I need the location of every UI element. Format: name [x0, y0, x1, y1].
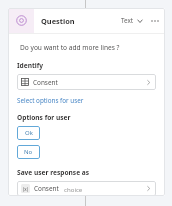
staticText: Select options for user — [17, 96, 84, 105]
button[interactable]: No — [17, 145, 40, 159]
staticText: Consent — [34, 184, 59, 193]
button[interactable]: Text — [119, 14, 145, 27]
staticText: Consent — [33, 78, 58, 87]
button[interactable]: Consent — [17, 74, 156, 90]
staticText: Options for user — [17, 113, 71, 122]
button[interactable]: (x) — [17, 181, 156, 196]
button[interactable]: Select options for user — [17, 96, 84, 105]
staticText: choice — [64, 185, 83, 193]
staticText: Question — [41, 16, 75, 26]
staticText: No — [24, 148, 33, 156]
staticText: Save user response as — [17, 168, 90, 177]
staticText: (x) — [23, 186, 28, 192]
staticText: Text — [121, 16, 134, 25]
staticText: Do you want to add more lines ? — [20, 43, 120, 52]
button[interactable]: More options — [148, 14, 161, 27]
staticText: Ok — [25, 129, 33, 137]
button[interactable]: Ok — [17, 126, 40, 140]
staticText: Identify — [17, 61, 44, 70]
